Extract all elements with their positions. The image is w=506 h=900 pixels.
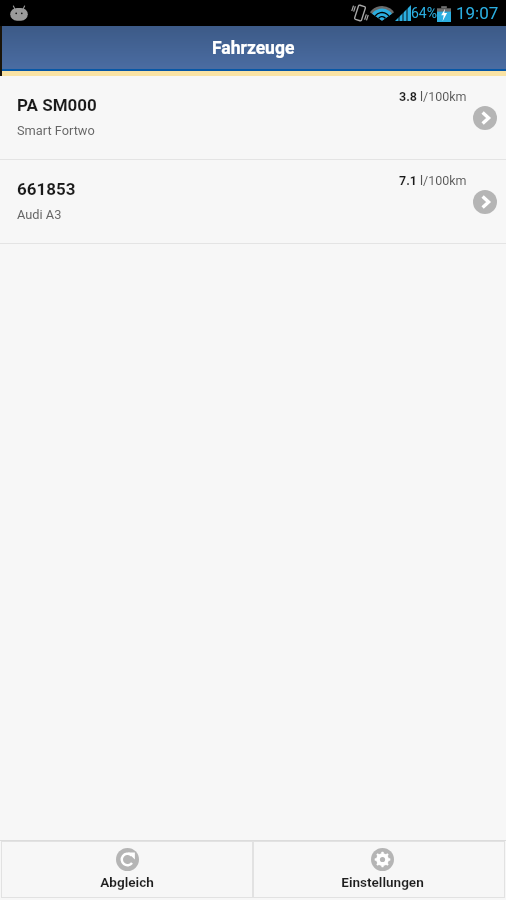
button[interactable]: Abgleich bbox=[1, 841, 253, 898]
staticText: Fahrzeuge bbox=[212, 38, 295, 59]
staticText: Smart Fortwo bbox=[17, 123, 95, 138]
button[interactable]: PA SM000 bbox=[0, 76, 506, 159]
staticText: 3.8 bbox=[399, 89, 417, 104]
staticText: Einstellungen bbox=[341, 874, 424, 890]
button[interactable]: Einstellungen bbox=[253, 841, 505, 898]
staticText: Abgleich bbox=[100, 874, 154, 890]
button[interactable]: Open 661853 details bbox=[473, 190, 497, 214]
staticText: 19:07 bbox=[456, 3, 499, 23]
staticText: 661853 bbox=[17, 179, 76, 199]
button[interactable]: Open PA SM000 details bbox=[473, 106, 497, 130]
staticText: 7.1 bbox=[399, 173, 417, 188]
staticText: PA SM000 bbox=[17, 95, 97, 115]
staticText: Audi A3 bbox=[17, 207, 62, 222]
staticText: l/100km bbox=[420, 173, 467, 188]
staticText: 64% bbox=[411, 5, 437, 21]
staticText: l/100km bbox=[420, 89, 467, 104]
button[interactable]: 661853 bbox=[0, 160, 506, 243]
